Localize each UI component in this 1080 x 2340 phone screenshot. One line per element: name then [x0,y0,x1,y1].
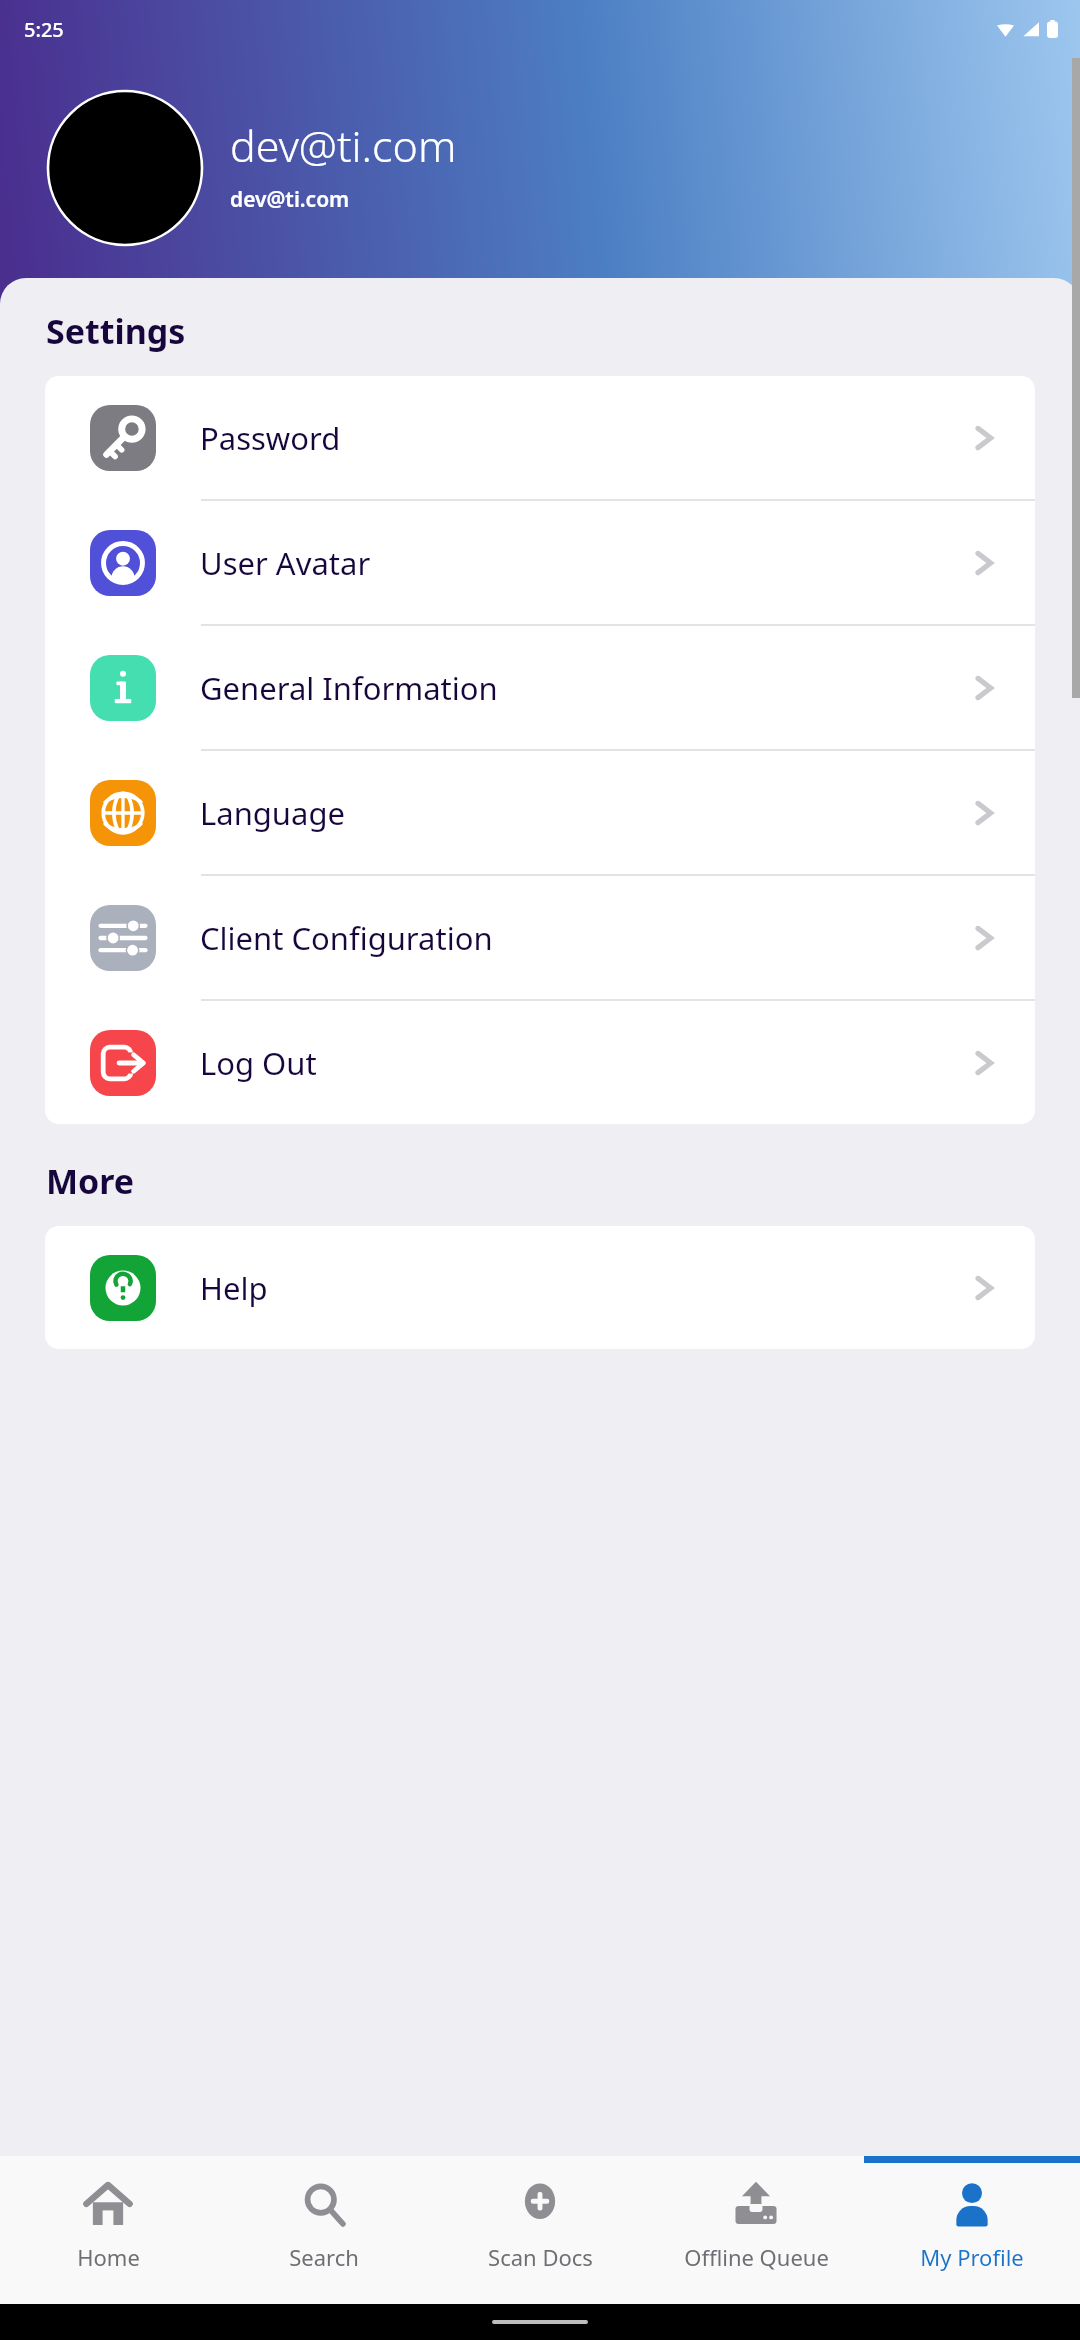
staticText: Password [200,417,969,459]
button[interactable]: Password [45,376,1035,501]
button[interactable]: Home [0,2156,216,2304]
staticText: Language [200,792,969,834]
staticText: Offline Queue [684,2242,829,2272]
staticText: Client Configuration [200,917,969,959]
staticText: Scan Docs [488,2242,593,2272]
button[interactable]: Offline Queue [648,2156,864,2304]
staticText: Search [289,2242,359,2272]
staticText: 5:25 [24,16,64,43]
button[interactable]: Scan Docs [432,2156,648,2304]
staticText: My Profile [920,2242,1024,2272]
staticText: User Avatar [200,542,969,584]
staticText: Settings [46,308,186,354]
staticText: More [46,1158,135,1204]
button[interactable]: Help [45,1226,1035,1349]
staticText: dev@ti.com [230,185,350,214]
button[interactable]: Client Configuration [45,876,1035,1001]
button[interactable]: My Profile [864,2156,1080,2304]
button[interactable]: User Avatar [45,501,1035,626]
button[interactable]: Search [216,2156,432,2304]
button[interactable]: Language [45,751,1035,876]
staticText: General Information [200,667,969,709]
staticText: Help [200,1267,969,1309]
button[interactable]: Log Out [45,1001,1035,1124]
staticText: Log Out [200,1042,969,1084]
staticText: dev@ti.com [230,116,457,175]
staticText: Home [77,2242,140,2272]
button[interactable]: General Information [45,626,1035,751]
